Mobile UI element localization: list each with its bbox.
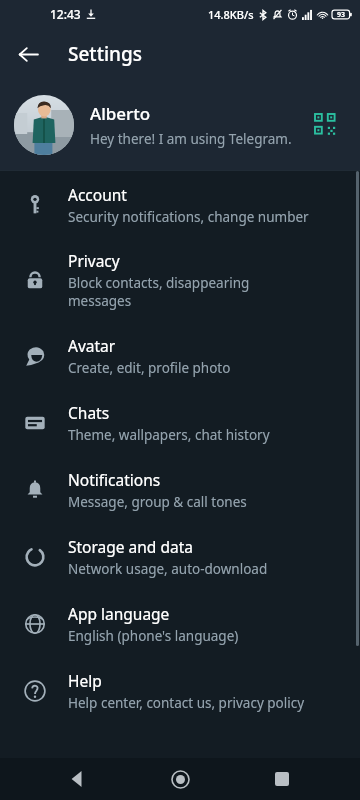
button[interactable]: Help (0, 657, 360, 724)
button[interactable]: Account (0, 171, 360, 238)
button[interactable]: QR code (306, 105, 346, 145)
button[interactable]: Back (54, 758, 102, 800)
staticText: App language (68, 603, 170, 624)
button[interactable]: Avatar (0, 322, 360, 389)
staticText: Hey there! I am using Telegram. (90, 130, 292, 148)
staticText: English (phone's language) (68, 627, 239, 645)
button[interactable]: Back (8, 34, 48, 74)
staticText: Help center, contact us, privacy policy (68, 694, 305, 712)
staticText: Notifications (68, 469, 161, 490)
staticText: Network usage, auto-download (68, 560, 268, 578)
button[interactable]: App language (0, 590, 360, 657)
staticText: Security notifications, change number (68, 208, 309, 226)
button[interactable]: Notifications (0, 456, 360, 523)
staticText: 14.8KB/s (208, 7, 254, 22)
button[interactable]: Chats (0, 389, 360, 456)
button[interactable]: Alberto (0, 80, 360, 170)
staticText: Account (68, 184, 127, 205)
staticText: Privacy (68, 250, 120, 271)
button[interactable]: Storage and data (0, 523, 360, 590)
button[interactable]: Recents (258, 758, 306, 800)
staticText: Theme, wallpapers, chat history (68, 426, 270, 444)
staticText: Chats (68, 402, 110, 423)
staticText: Message, group & call tones (68, 493, 247, 511)
staticText: Settings (68, 41, 142, 67)
staticText: 93 (337, 10, 346, 20)
staticText: Block contacts, disappearing messages (68, 274, 250, 310)
button[interactable]: Home (156, 758, 204, 800)
staticText: 12:43 (50, 6, 81, 22)
staticText: Create, edit, profile photo (68, 359, 231, 377)
button[interactable]: Privacy (0, 238, 360, 322)
staticText: Avatar (68, 335, 116, 356)
staticText: Help (68, 670, 102, 691)
staticText: Alberto (90, 102, 151, 125)
staticText: Storage and data (68, 536, 193, 557)
